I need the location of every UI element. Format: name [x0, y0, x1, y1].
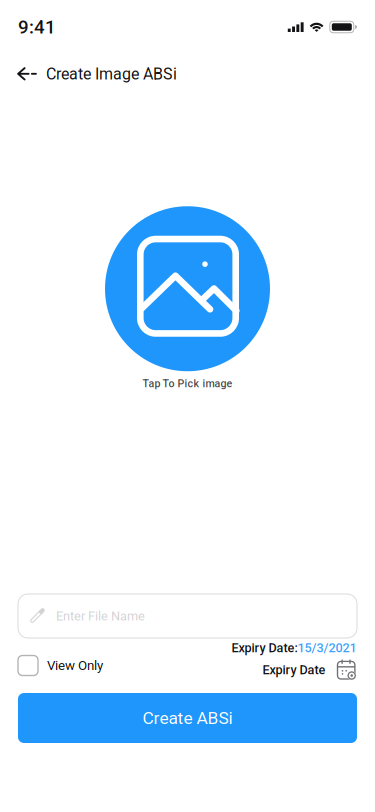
button[interactable]: Tap To Pick image	[105, 206, 270, 390]
staticText: Create Image ABSi	[46, 65, 177, 83]
staticText: 15/3/2021	[297, 641, 356, 655]
staticText: View Only	[47, 658, 103, 673]
button[interactable]: Back	[0, 57, 46, 91]
staticText: 9:41	[18, 16, 56, 38]
staticText: Expiry Date:	[231, 641, 297, 655]
staticText: Enter File Name	[56, 608, 145, 623]
button[interactable]: Create ABSi	[18, 693, 357, 743]
button[interactable]: Enter File Name	[18, 594, 357, 638]
staticText: Create ABSi	[142, 708, 232, 728]
staticText: Tap To Pick image	[142, 377, 232, 390]
staticText: Expiry Date	[262, 662, 325, 677]
button[interactable]: View Only	[18, 649, 138, 681]
button[interactable]: Choose expiry date	[231, 638, 356, 683]
